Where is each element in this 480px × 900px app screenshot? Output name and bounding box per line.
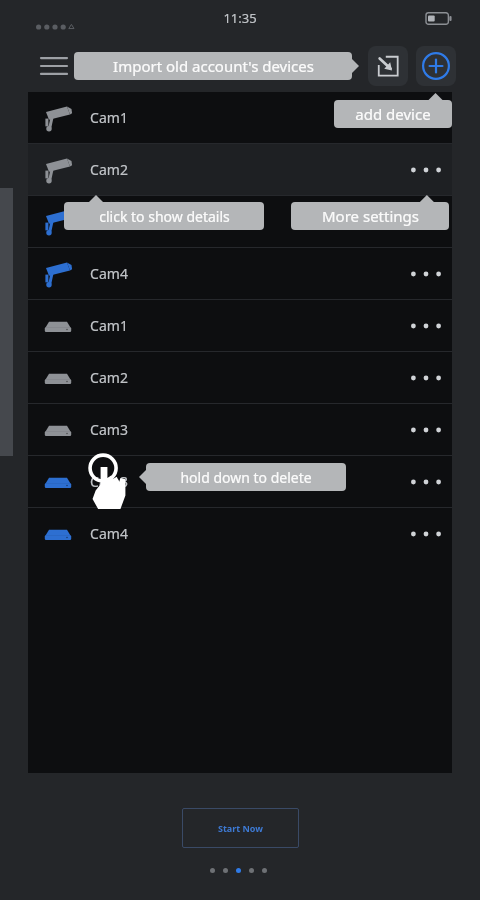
button[interactable]: More settings bbox=[400, 249, 452, 299]
button[interactable]: More settings bbox=[400, 509, 452, 559]
staticText: 11:35 bbox=[223, 9, 257, 27]
staticText: click to show details bbox=[99, 207, 230, 226]
staticText: hold down to delete bbox=[180, 468, 312, 487]
button[interactable]: Cam3 bbox=[28, 456, 452, 507]
button[interactable]: More settings bbox=[400, 405, 452, 455]
staticText: add device bbox=[355, 104, 431, 124]
staticText: Cam1 bbox=[90, 316, 128, 335]
staticText: Cam4 bbox=[90, 264, 128, 283]
button[interactable]: Cam2 bbox=[28, 144, 452, 195]
button[interactable]: Cam4 bbox=[28, 508, 452, 559]
staticText: Cam4 bbox=[90, 524, 128, 543]
button[interactable]: Import devices bbox=[368, 46, 408, 86]
button[interactable]: Start Now bbox=[182, 808, 299, 848]
staticText: Cam3 bbox=[90, 472, 128, 491]
staticText: Start Now bbox=[218, 822, 263, 834]
button[interactable]: Cam1 bbox=[28, 300, 452, 351]
staticText: Import old account's devices bbox=[113, 56, 314, 76]
button[interactable]: Cam4 bbox=[28, 248, 452, 299]
staticText: Cam2 bbox=[90, 160, 128, 179]
button[interactable]: More settings bbox=[400, 197, 452, 247]
button[interactable]: Cam1 bbox=[28, 92, 452, 143]
staticText: Cam1 bbox=[90, 108, 128, 127]
staticText: More settings bbox=[322, 206, 419, 226]
staticText: Cam3 bbox=[90, 212, 128, 231]
button[interactable]: Add device bbox=[416, 46, 456, 86]
button[interactable]: More settings bbox=[400, 457, 452, 507]
button[interactable]: More settings bbox=[400, 301, 452, 351]
button[interactable]: Menu bbox=[30, 40, 78, 92]
staticText: Cam2 bbox=[90, 368, 128, 387]
button[interactable]: More settings bbox=[400, 353, 452, 403]
button[interactable]: Cam3 bbox=[28, 404, 452, 455]
button[interactable]: Cam2 bbox=[28, 352, 452, 403]
button[interactable]: More settings bbox=[400, 145, 452, 195]
button[interactable]: Cam3 bbox=[28, 196, 452, 247]
staticText: Cam3 bbox=[90, 420, 128, 439]
